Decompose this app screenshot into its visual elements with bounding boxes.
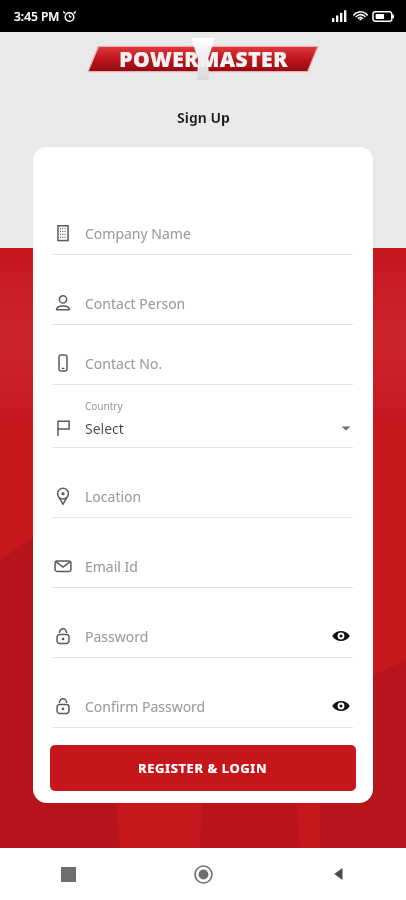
button[interactable]: REGISTER & LOGIN bbox=[50, 745, 356, 791]
staticText: Contact Person bbox=[85, 294, 353, 313]
button[interactable]: Select country bbox=[33, 385, 373, 448]
button[interactable]: Recents bbox=[0, 848, 136, 900]
button[interactable]: Home bbox=[136, 848, 271, 900]
staticText: Contact No. bbox=[85, 354, 353, 373]
button[interactable]: Show password bbox=[329, 624, 353, 648]
staticText: Company Name bbox=[85, 224, 353, 243]
staticText: Select bbox=[85, 419, 339, 438]
staticText: Confirm Password bbox=[85, 697, 329, 716]
staticText: Password bbox=[85, 627, 329, 646]
staticText: Location bbox=[85, 487, 353, 506]
staticText: Email Id bbox=[85, 557, 353, 576]
button[interactable]: Contact No. bbox=[33, 325, 373, 385]
staticText: REGISTER & LOGIN bbox=[138, 759, 268, 777]
button[interactable]: Company Name bbox=[33, 185, 373, 255]
button[interactable]: Confirm Password bbox=[33, 658, 373, 728]
staticText: Country bbox=[85, 399, 123, 413]
button[interactable]: Show password bbox=[329, 694, 353, 718]
button[interactable]: Back bbox=[271, 848, 406, 900]
button[interactable]: Password bbox=[33, 588, 373, 658]
staticText: Sign Up bbox=[177, 108, 230, 127]
button[interactable]: Email Id bbox=[33, 518, 373, 588]
staticText: 3:45 PM bbox=[14, 8, 60, 24]
button[interactable]: Contact Person bbox=[33, 255, 373, 325]
staticText: POWERMASTER bbox=[119, 45, 288, 74]
button[interactable]: Location bbox=[33, 448, 373, 518]
